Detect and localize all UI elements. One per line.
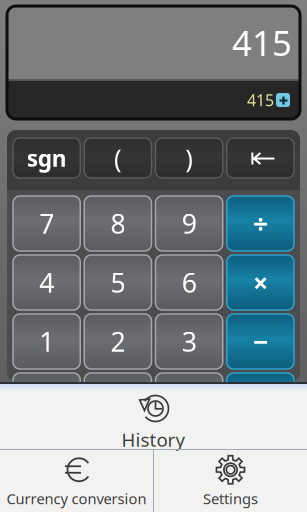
staticText: ×	[253, 265, 268, 300]
button[interactable]: .	[84, 373, 151, 428]
staticText: 3	[182, 324, 197, 359]
button[interactable]: 7	[13, 196, 80, 251]
button[interactable]: 1	[13, 314, 80, 369]
staticText: =	[182, 383, 197, 418]
button[interactable]: =	[155, 373, 223, 428]
button[interactable]: −	[227, 314, 294, 369]
button[interactable]: 0	[13, 373, 80, 428]
button[interactable]: ÷	[227, 196, 294, 251]
button[interactable]: +	[227, 373, 294, 428]
button[interactable]: Currency conversion	[0, 450, 153, 512]
button[interactable]: )	[155, 138, 223, 178]
staticText: 7	[39, 206, 54, 241]
staticText: 415	[232, 19, 292, 65]
staticText: History	[121, 427, 185, 452]
staticText: 415	[247, 89, 274, 111]
staticText: 0	[39, 383, 54, 418]
button[interactable]: 3	[155, 314, 223, 369]
staticText: 9	[182, 206, 197, 241]
button[interactable]: 4	[13, 255, 80, 310]
staticText: 8	[110, 206, 125, 241]
button[interactable]: 2	[84, 314, 151, 369]
staticText: 4	[39, 265, 54, 300]
staticText: 1	[39, 324, 54, 359]
button[interactable]: 8	[84, 196, 151, 251]
button[interactable]: History	[0, 392, 307, 449]
button[interactable]: Settings	[154, 450, 307, 512]
staticText: (	[114, 141, 122, 175]
staticText: 6	[182, 265, 197, 300]
staticText: 5	[110, 265, 125, 300]
staticText: ÷	[253, 206, 268, 241]
staticText: Currency conversion	[6, 489, 146, 508]
button[interactable]: (	[84, 138, 151, 178]
staticText: Settings	[203, 489, 258, 508]
button[interactable]: ×	[227, 255, 294, 310]
button[interactable]: 9	[155, 196, 223, 251]
staticText: sgn	[27, 143, 67, 173]
staticText: −	[253, 324, 268, 359]
staticText: +	[253, 383, 268, 418]
button[interactable]: sgn	[13, 138, 80, 178]
button[interactable]: Backspace	[227, 138, 294, 178]
staticText: .	[114, 383, 121, 418]
button[interactable]: 6	[155, 255, 223, 310]
button[interactable]: 5	[84, 255, 151, 310]
staticText: )	[185, 141, 193, 175]
staticText: 2	[110, 324, 125, 359]
